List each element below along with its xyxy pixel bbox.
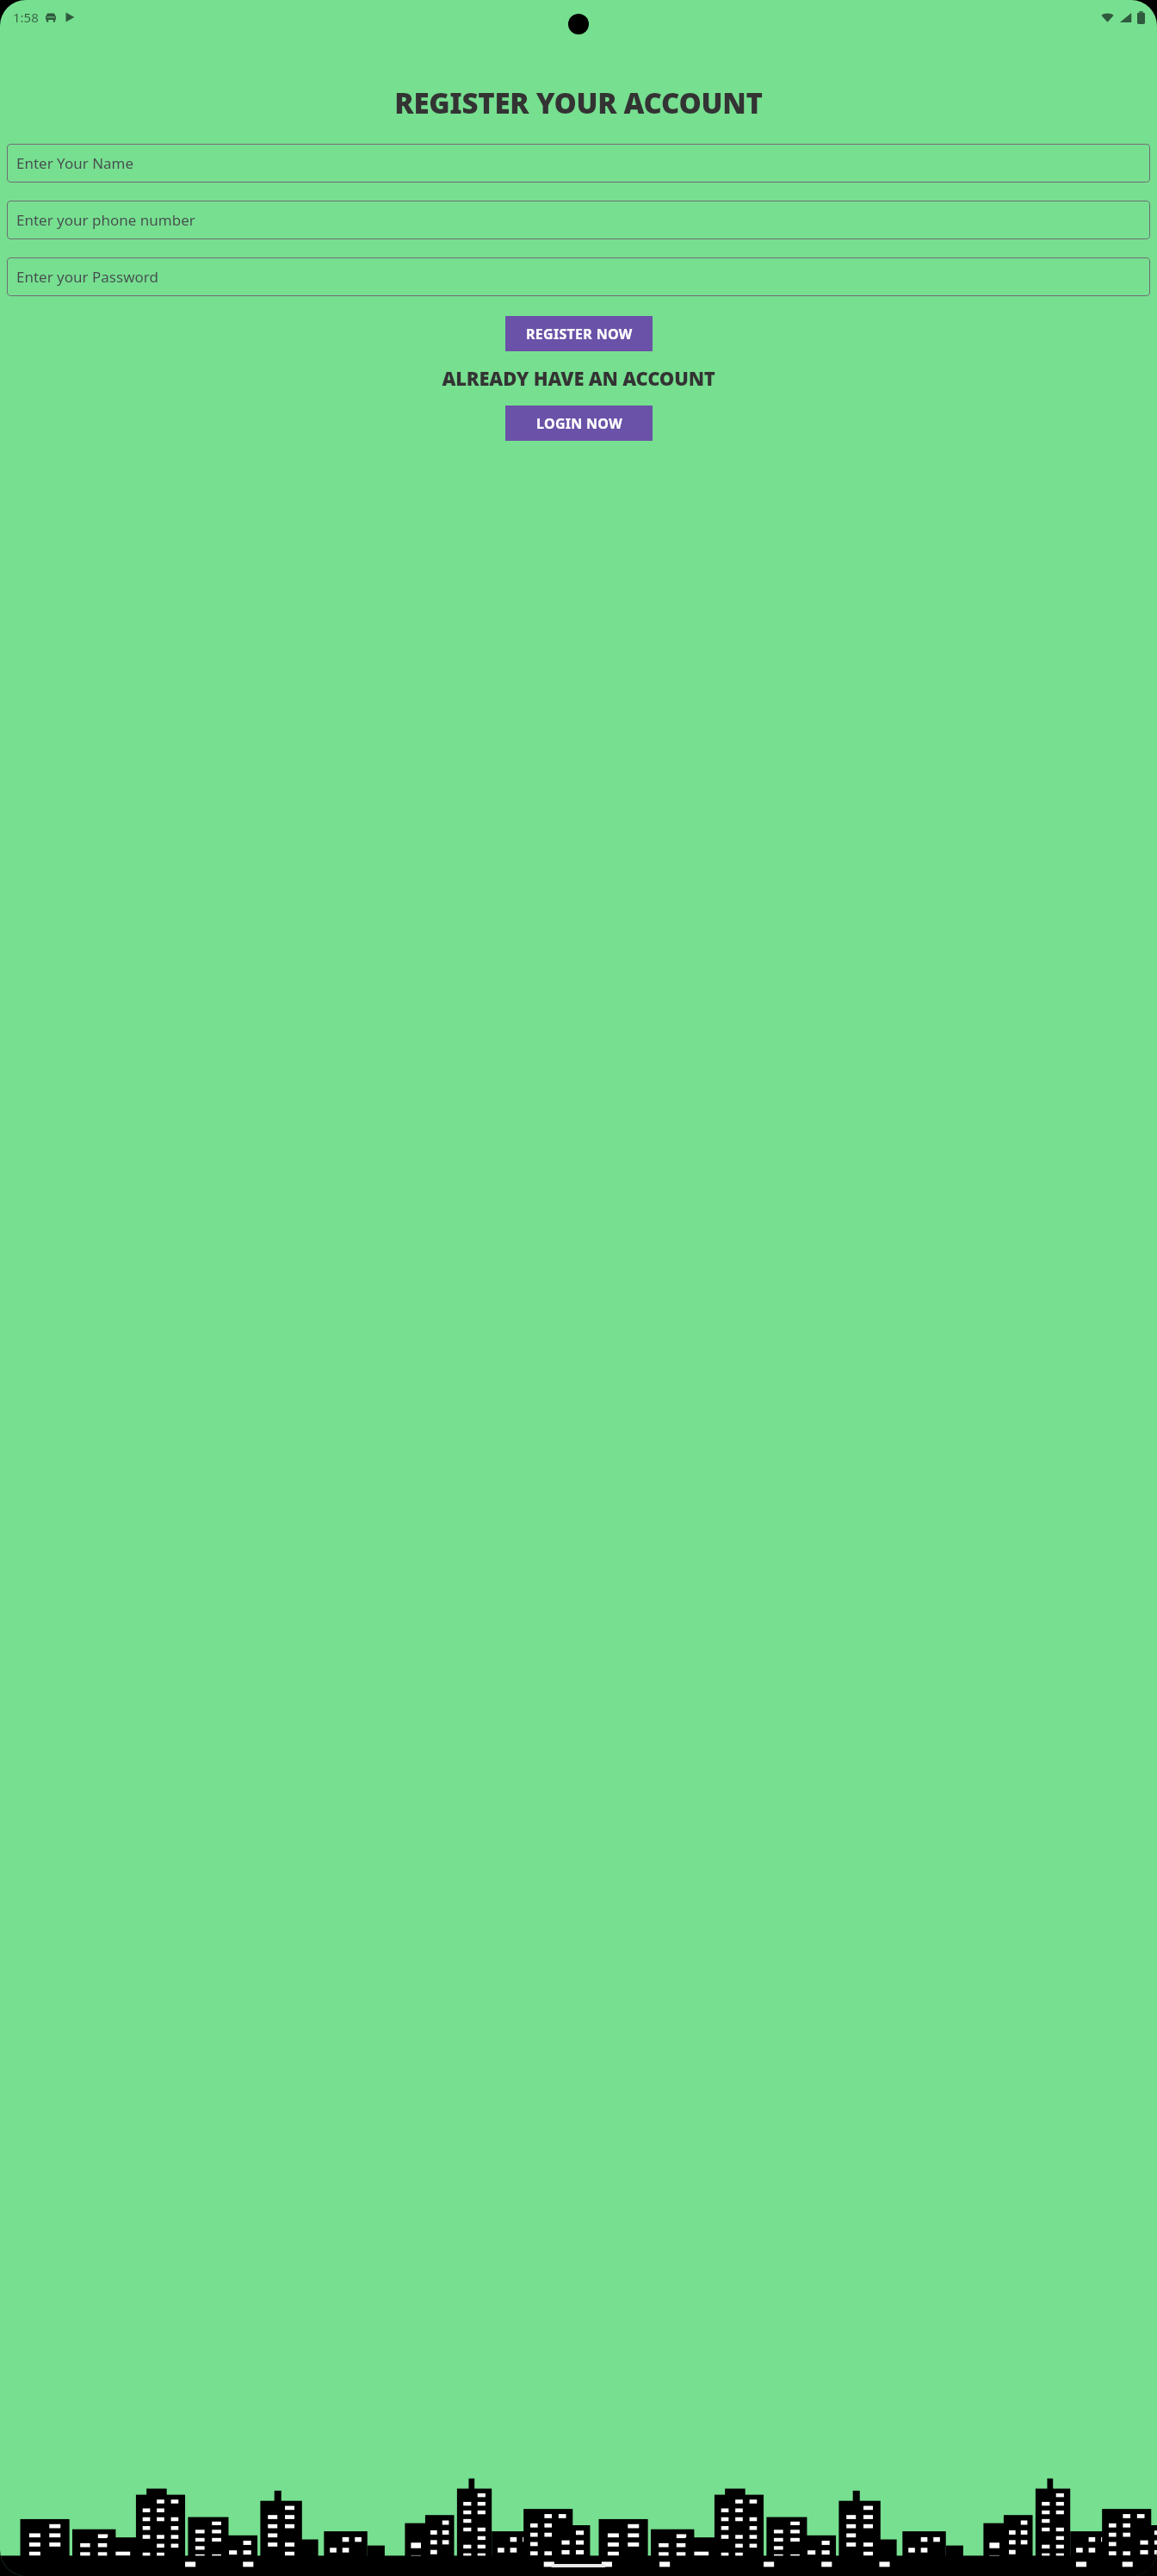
staticText: REGISTER YOUR ACCOUNT bbox=[0, 84, 1157, 122]
button[interactable]: REGISTER NOW bbox=[505, 316, 653, 351]
staticText: REGISTER NOW bbox=[526, 325, 633, 344]
staticText: LOGIN NOW bbox=[536, 414, 622, 433]
staticText: 1:58 bbox=[13, 9, 39, 26]
button[interactable]: Enter your phone number bbox=[7, 201, 1150, 239]
button[interactable]: Enter your Password bbox=[7, 257, 1150, 296]
staticText: Enter Your Name bbox=[16, 153, 134, 173]
staticText: Enter your phone number bbox=[16, 210, 195, 230]
button[interactable]: LOGIN NOW bbox=[505, 406, 653, 441]
staticText: Enter your Password bbox=[16, 267, 158, 287]
staticText: ALREADY HAVE AN ACCOUNT bbox=[0, 365, 1157, 391]
button[interactable]: Enter Your Name bbox=[7, 144, 1150, 183]
